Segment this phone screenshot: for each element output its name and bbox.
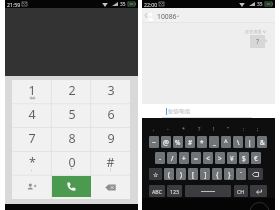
button[interactable]: ? (250, 35, 265, 48)
staticText: ABC (152, 188, 162, 195)
button[interactable]: * (197, 136, 207, 148)
button[interactable]: 1 (12, 80, 52, 103)
staticText: 35 (120, 1, 126, 8)
staticText: 0 (68, 154, 76, 171)
staticText: 4 (28, 106, 36, 123)
staticText: , (31, 166, 33, 172)
staticText: , (153, 125, 155, 132)
staticText: { (216, 170, 219, 179)
button[interactable]: 4 (12, 103, 52, 127)
staticText: " (227, 125, 230, 132)
staticText: ¥ (230, 154, 234, 163)
button[interactable]: $ (239, 152, 249, 164)
staticText: + (70, 166, 73, 172)
staticText: 123 (170, 188, 179, 195)
staticText: | (248, 138, 252, 147)
button[interactable]: 10086 (157, 12, 177, 21)
staticText: ? (256, 37, 260, 47)
staticText: ~ (152, 138, 156, 147)
button[interactable]: 5 (52, 103, 91, 127)
button[interactable]: ( (164, 168, 174, 180)
staticText: % (175, 138, 181, 147)
staticText: - (159, 154, 162, 163)
button[interactable]: % (173, 136, 183, 148)
other: Home (250, 206, 269, 210)
button[interactable]: 3 (91, 80, 130, 103)
staticText: * (182, 125, 186, 132)
staticText: 22:00 (144, 1, 158, 8)
button[interactable]: # (185, 136, 195, 148)
button[interactable]: - (155, 152, 165, 164)
staticText: * (29, 154, 36, 171)
staticText: & (260, 138, 265, 147)
button[interactable]: < (203, 152, 213, 164)
button[interactable]: / (167, 152, 177, 164)
button[interactable]: 2 (52, 80, 91, 103)
button[interactable]: _ (209, 136, 219, 148)
staticText: ] (204, 170, 207, 179)
staticText: 9 (107, 130, 115, 147)
button[interactable]: ) (176, 168, 186, 180)
staticText: # (188, 138, 193, 147)
staticText: CH (237, 188, 245, 195)
button[interactable]: 0 (52, 151, 91, 175)
staticText: 35 (257, 1, 263, 8)
button[interactable]: ] (200, 168, 210, 180)
button[interactable]: & (257, 136, 267, 148)
button[interactable]: Emoji (149, 168, 162, 180)
button[interactable]: Enter (250, 185, 267, 197)
button[interactable]: [ (188, 168, 198, 180)
button[interactable]: ~ (149, 136, 159, 148)
button[interactable]: # (91, 151, 130, 175)
button[interactable]: Add contact (12, 175, 52, 199)
staticText: 8 (68, 130, 76, 147)
button[interactable]: > (215, 152, 225, 164)
staticText: ☆ (153, 171, 159, 178)
button[interactable]: = (191, 152, 201, 164)
staticText: 3 (107, 82, 115, 99)
button[interactable]: ¥ (227, 152, 237, 164)
staticText: \ (237, 138, 240, 147)
staticText: 1 (28, 82, 36, 99)
staticText: 21:59 (7, 1, 21, 8)
button[interactable]: } (224, 168, 234, 180)
button[interactable]: 123 (167, 185, 182, 197)
staticText: 6 (107, 106, 115, 123)
button[interactable]: 6 (91, 103, 130, 127)
button[interactable]: ` (236, 168, 246, 180)
button[interactable]: ABC (149, 185, 165, 197)
staticText: - (167, 125, 169, 132)
staticText: € (254, 154, 258, 163)
button[interactable]: € (251, 152, 261, 164)
button[interactable]: Space (185, 185, 231, 197)
staticText: 正在发送 (245, 29, 262, 34)
staticText: < (206, 154, 210, 163)
button[interactable]: { (212, 168, 222, 180)
button[interactable]: CH (234, 185, 248, 197)
staticText: ? (198, 125, 201, 132)
staticText: ( (168, 170, 170, 179)
button[interactable]: \ (233, 136, 243, 148)
staticText: ! (213, 125, 215, 132)
button[interactable]: Backspace (91, 175, 130, 199)
staticText: : (243, 125, 245, 132)
button[interactable]: ^ (221, 136, 231, 148)
staticText: * (200, 138, 204, 147)
button[interactable]: @ (161, 136, 171, 148)
staticText: ; (257, 125, 259, 132)
button[interactable]: Backspace (248, 168, 263, 180)
staticText: / (171, 154, 174, 163)
button[interactable]: 7 (12, 127, 52, 151)
button[interactable]: Call (52, 176, 91, 197)
staticText: 7 (28, 130, 36, 147)
button[interactable]: 9 (91, 127, 130, 151)
staticText: > (218, 154, 222, 163)
staticText: + (182, 154, 186, 163)
button[interactable]: * (12, 151, 52, 175)
button[interactable]: 8 (52, 127, 91, 151)
staticText: @ (163, 138, 169, 147)
button[interactable]: + (179, 152, 189, 164)
button[interactable]: | (245, 136, 255, 148)
staticText: ^ (224, 138, 228, 147)
button[interactable]: Back (142, 10, 150, 20)
